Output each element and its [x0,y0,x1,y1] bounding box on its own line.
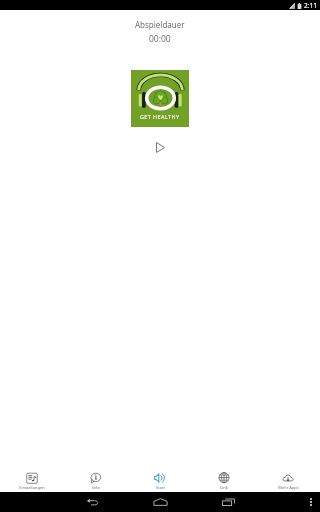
staticText: GET HEALTHY [140,113,180,120]
button[interactable]: Mehr Apps [256,462,320,490]
staticText: Einstellungen [19,485,45,490]
button[interactable]: Link [192,462,256,490]
staticText: Abspieldauer [135,19,185,30]
button[interactable]: Info [64,462,128,490]
staticText: 2:11 [304,1,317,10]
button[interactable]: Play [149,136,171,158]
staticText: 00:00 [149,33,171,45]
staticText: Start [156,485,165,490]
staticText: Mehr Apps [278,485,299,490]
button[interactable]: Home [147,492,173,512]
staticText: Info [92,485,100,490]
button[interactable]: Recent apps [215,492,241,512]
button[interactable]: Back [79,492,105,512]
staticText: Link [220,485,228,490]
button[interactable]: More options [302,492,320,512]
button[interactable]: Einstellungen [0,462,64,490]
button[interactable]: Start [128,462,192,490]
